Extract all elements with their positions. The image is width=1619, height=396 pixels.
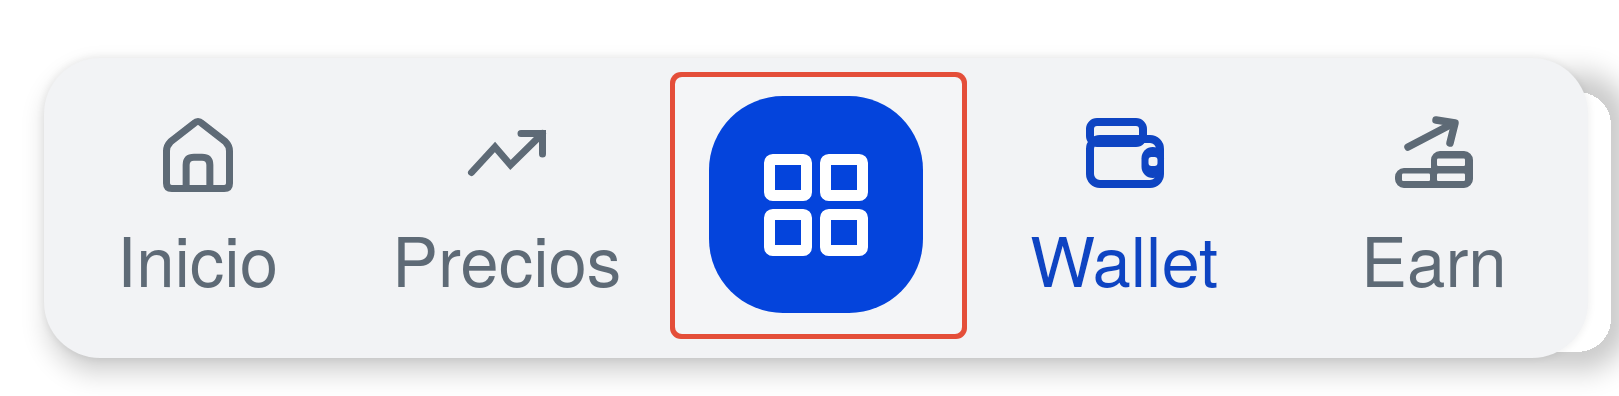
staticText: Earn <box>1361 208 1507 307</box>
button[interactable]: Inicio <box>44 58 352 358</box>
staticText: Wallet <box>1030 208 1219 307</box>
button[interactable]: Earn <box>1279 58 1588 358</box>
button[interactable]: Precios <box>352 58 661 358</box>
button[interactable]: Wallet <box>970 58 1279 358</box>
button[interactable]: Apps <box>675 77 962 334</box>
staticText: Precios <box>392 208 622 307</box>
staticText: Inicio <box>117 208 279 307</box>
